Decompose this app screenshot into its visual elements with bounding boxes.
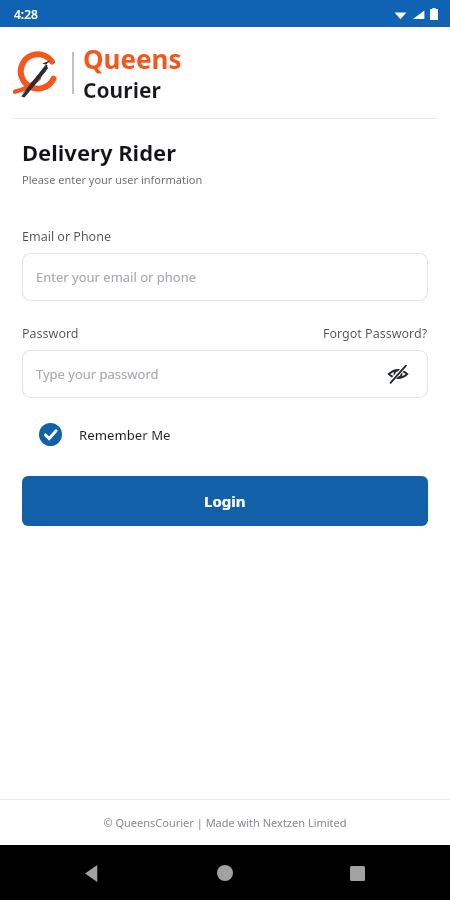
button[interactable]: Show password (384, 360, 412, 388)
staticText: Enter your email or phone (36, 268, 197, 286)
button[interactable]: Back (76, 856, 110, 890)
button[interactable]: Home (208, 856, 242, 890)
staticText: Forgot Password? (323, 325, 428, 342)
button[interactable]: Recent apps (340, 856, 374, 890)
staticText: Courier (83, 76, 161, 105)
staticText: Please enter your user information (22, 172, 203, 187)
staticText: Login (204, 491, 246, 511)
staticText: Email or Phone (22, 228, 111, 245)
staticText: Delivery Rider (22, 137, 177, 167)
staticText: Remember Me (79, 426, 171, 444)
staticText: Type your password (36, 365, 159, 383)
button[interactable]: Type your password (22, 350, 428, 398)
staticText: © QueensCourier | Made with Nextzen Limi… (103, 815, 347, 830)
staticText: Password (22, 325, 79, 342)
staticText: 4:28 (14, 6, 38, 22)
button[interactable]: Enter your email or phone (22, 253, 428, 301)
button[interactable]: Forgot Password? (323, 325, 428, 342)
button[interactable]: Remember Me (22, 423, 171, 446)
button[interactable]: Login (22, 476, 428, 526)
staticText: Queens (83, 41, 182, 76)
